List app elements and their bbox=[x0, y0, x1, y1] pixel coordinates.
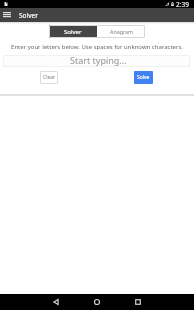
staticText: Enter your letters below. Use spaces for… bbox=[3, 43, 191, 51]
staticText: Clear bbox=[43, 74, 56, 81]
staticText: Solve bbox=[137, 74, 150, 81]
button[interactable]: Home bbox=[87, 294, 107, 310]
staticText: Anagram bbox=[110, 28, 133, 35]
button[interactable]: Back bbox=[46, 294, 66, 310]
button[interactable]: Solver bbox=[49, 25, 97, 38]
button[interactable]: Clear bbox=[40, 71, 58, 84]
staticText: Solver bbox=[19, 11, 38, 20]
staticText: 2:39 bbox=[176, 0, 189, 8]
button[interactable]: Anagram bbox=[97, 25, 145, 38]
staticText: Start typing... bbox=[70, 54, 127, 66]
button[interactable]: Start typing... bbox=[3, 55, 190, 67]
staticText: Solver bbox=[64, 28, 82, 36]
button[interactable]: Solve bbox=[134, 71, 153, 84]
button[interactable]: Recent apps bbox=[128, 294, 148, 310]
button[interactable]: Open navigation drawer bbox=[0, 8, 14, 22]
